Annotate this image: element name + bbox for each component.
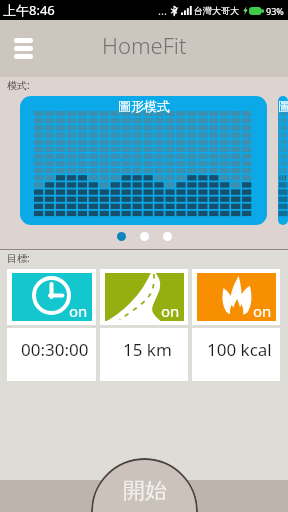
staticText: 目標:	[7, 251, 30, 265]
staticText: 圖形模式	[118, 98, 170, 114]
button[interactable]: on	[105, 273, 184, 321]
staticText: ...	[158, 3, 167, 18]
staticText: 模式:	[7, 78, 30, 92]
staticText: 圖形模式	[278, 98, 288, 114]
button[interactable]: 圖形模式	[278, 96, 288, 225]
button[interactable]: on	[197, 273, 276, 321]
staticText: on	[161, 301, 180, 321]
button[interactable]: 00:30:00	[7, 328, 96, 381]
button[interactable]: 100 kcal	[192, 328, 280, 381]
staticText: 100 kcal	[207, 338, 272, 361]
button[interactable]	[117, 232, 126, 241]
button[interactable]	[140, 232, 149, 241]
button[interactable]: on	[12, 273, 92, 321]
button[interactable]	[163, 232, 172, 241]
button[interactable]: 開始	[91, 458, 198, 512]
staticText: on	[253, 301, 272, 321]
staticText: 上午8:46	[3, 1, 55, 19]
staticText: 15 km	[123, 338, 172, 361]
staticText: 00:30:00	[21, 338, 89, 361]
staticText: 台灣大哥大	[194, 5, 239, 16]
staticText: 開始	[123, 477, 167, 505]
staticText: on	[69, 301, 88, 321]
staticText: HomeFit	[102, 30, 187, 60]
staticText: 93%	[266, 5, 284, 17]
button[interactable]: Open navigation menu	[8, 26, 39, 71]
button[interactable]: 15 km	[100, 328, 188, 381]
button[interactable]: 圖形模式	[20, 96, 267, 225]
